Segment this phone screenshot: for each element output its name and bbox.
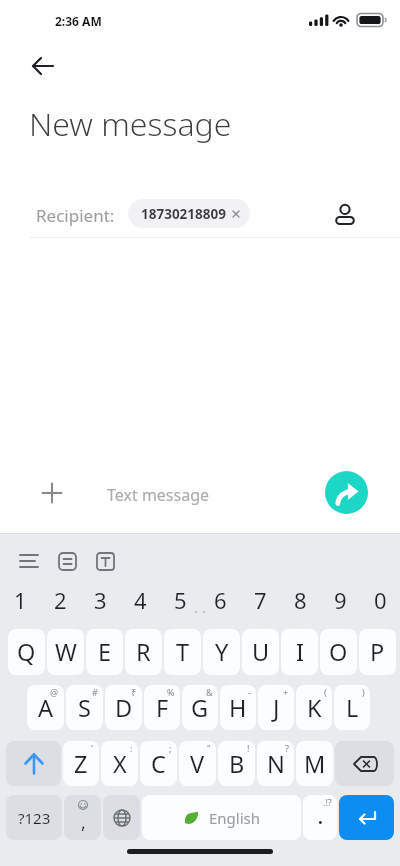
staticText: - (248, 686, 251, 698)
button[interactable]: I (281, 629, 318, 675)
button[interactable] (339, 795, 394, 840)
staticText: M (304, 748, 326, 780)
staticText: 2:36 AM (55, 13, 102, 29)
staticText: 0 (374, 585, 387, 615)
button[interactable]: L (334, 685, 370, 730)
staticText: Recipient: (36, 204, 115, 227)
staticText: .!? (323, 796, 332, 808)
button[interactable]: C (140, 741, 177, 786)
staticText: B (229, 748, 245, 780)
button[interactable] (6, 741, 61, 786)
staticText: X (113, 748, 127, 780)
button[interactable]: , (64, 795, 101, 840)
staticText: G (191, 692, 209, 724)
staticText: H (229, 692, 247, 724)
button[interactable]: B (218, 741, 255, 786)
button[interactable]: N (257, 741, 294, 786)
button[interactable]: 5 (160, 585, 200, 615)
button[interactable]: 2 (40, 585, 80, 615)
button[interactable]: R (125, 629, 162, 675)
staticText: F (156, 692, 169, 724)
staticText: Q (17, 636, 36, 668)
button[interactable]: M (296, 741, 333, 786)
button[interactable]: Z (63, 741, 99, 786)
staticText: ₹ (131, 686, 137, 698)
button[interactable]: . (303, 795, 337, 840)
button[interactable] (40, 481, 64, 505)
button[interactable]: 6 (200, 585, 240, 615)
staticText: ?123 (18, 808, 51, 828)
button[interactable]: F (144, 685, 180, 730)
staticText: J (273, 692, 280, 724)
staticText: # (92, 686, 98, 698)
button[interactable]: 9 (320, 585, 360, 615)
staticText: ! (247, 742, 250, 754)
button[interactable]: 4 (120, 585, 160, 615)
staticText: 3 (94, 585, 107, 615)
button[interactable]: A (27, 685, 64, 730)
staticText: New message (29, 102, 232, 146)
button[interactable]: D (105, 685, 142, 730)
button[interactable]: 7 (240, 585, 280, 615)
button[interactable] (28, 52, 58, 82)
staticText: R (136, 636, 151, 668)
staticText: I (296, 636, 304, 668)
staticText: 4 (134, 585, 147, 615)
staticText: ; (169, 742, 172, 754)
button[interactable]: ?123 (6, 795, 62, 840)
staticText: 5 (174, 585, 187, 615)
button[interactable]: G (182, 685, 218, 730)
staticText: S (78, 692, 91, 724)
button[interactable]: S (66, 685, 103, 730)
staticText: V (190, 748, 205, 780)
button[interactable]: X (101, 741, 138, 786)
staticText: 7 (254, 585, 267, 615)
staticText: 9 (334, 585, 347, 615)
button[interactable] (103, 795, 140, 840)
button[interactable]: V (179, 741, 216, 786)
staticText: D (115, 692, 133, 724)
staticText: U (252, 636, 270, 668)
staticText: N (267, 748, 285, 780)
staticText: K (307, 692, 322, 724)
staticText: P (370, 636, 385, 668)
button[interactable]: 8 (280, 585, 320, 615)
staticText: A (38, 692, 54, 724)
staticText: + (283, 686, 289, 698)
staticText: C (151, 748, 166, 780)
button[interactable]: U (242, 629, 279, 675)
button[interactable]: 1 (0, 585, 40, 615)
staticText: Text message (107, 484, 210, 506)
button[interactable]: English (142, 795, 301, 840)
button[interactable] (325, 471, 368, 514)
staticText: Z (74, 748, 88, 780)
staticText: ) (362, 686, 365, 698)
button[interactable]: 0 (360, 585, 400, 615)
staticText: T (176, 636, 190, 668)
button[interactable]: T (164, 629, 201, 675)
staticText: Y (215, 636, 229, 668)
button[interactable]: 3 (80, 585, 120, 615)
staticText: ( (324, 686, 327, 698)
button[interactable] (333, 199, 357, 223)
staticText: English (209, 808, 261, 828)
staticText: 2 (54, 585, 67, 615)
staticText: L (346, 692, 359, 724)
button[interactable]: E (86, 629, 123, 675)
staticText: . (318, 806, 323, 829)
button[interactable]: O (320, 629, 357, 675)
staticText: , (81, 810, 86, 835)
button[interactable]: W (47, 629, 84, 675)
button[interactable]: Y (203, 629, 240, 675)
button[interactable]: P (359, 629, 396, 675)
button[interactable] (335, 741, 394, 786)
staticText: E (98, 636, 112, 668)
button[interactable]: J (258, 685, 294, 730)
staticText: " (207, 742, 211, 754)
button[interactable]: K (296, 685, 332, 730)
button[interactable]: Q (8, 629, 45, 675)
button[interactable] (18, 550, 118, 572)
button[interactable]: H (220, 685, 256, 730)
button[interactable]: 18730218809 (128, 199, 250, 228)
staticText: @ (50, 686, 59, 698)
